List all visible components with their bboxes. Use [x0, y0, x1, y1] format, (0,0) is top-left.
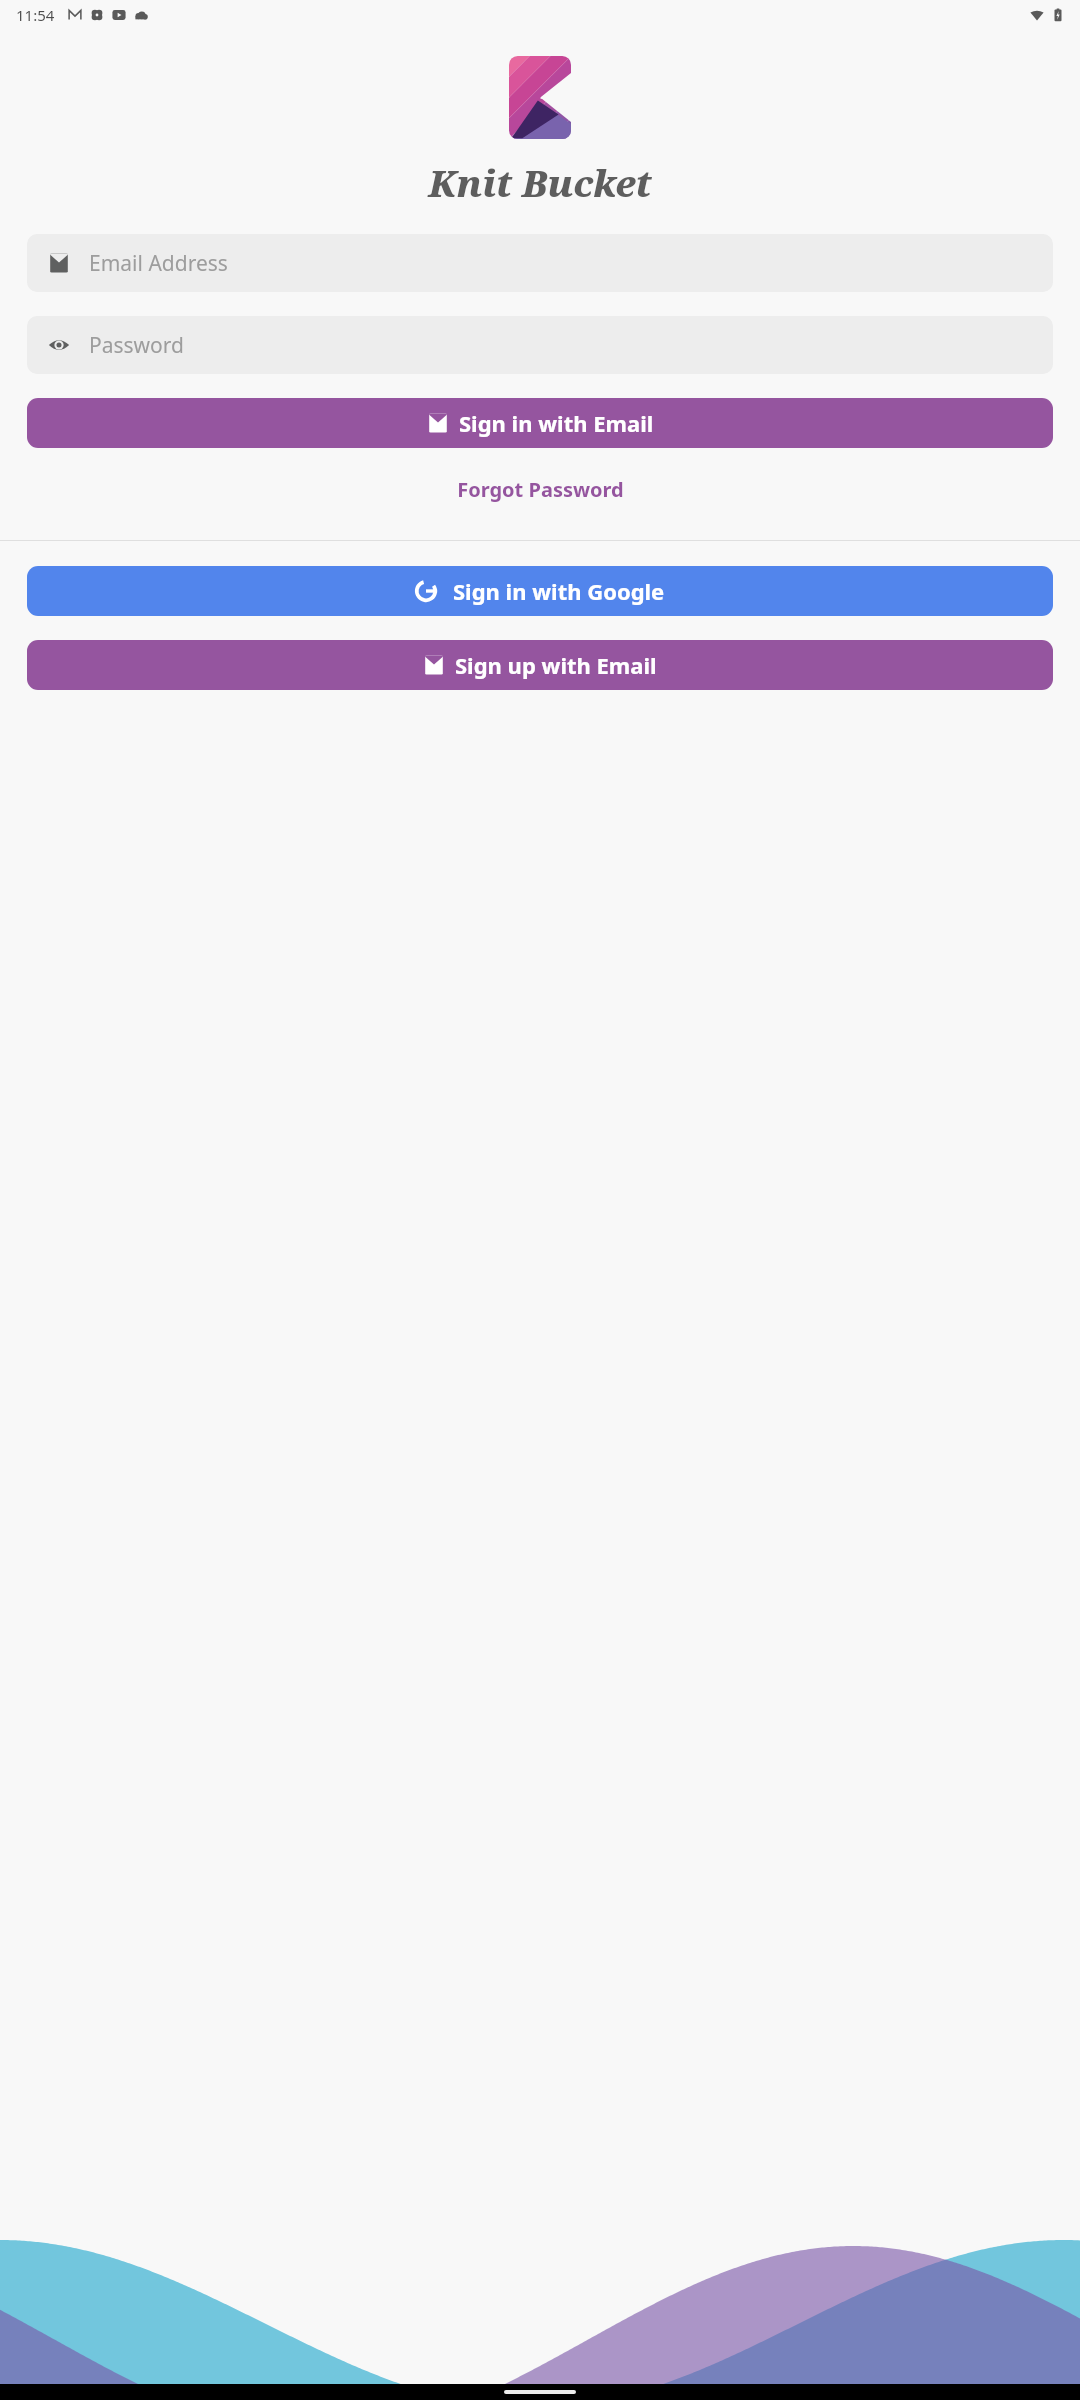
button[interactable]: Email [27, 234, 1053, 292]
staticText: Forgot Password [457, 476, 624, 503]
staticText: Knit Bucket [428, 157, 652, 207]
staticText: Password [89, 331, 184, 360]
staticText: Email Address [89, 249, 228, 278]
button[interactable]: Sign in with Email [27, 398, 1053, 448]
staticText: Sign up with Email [455, 650, 657, 680]
button[interactable]: Sign in with Google [27, 566, 1053, 616]
button[interactable]: Sign up with Email [27, 640, 1053, 690]
staticText: 11:54 [16, 5, 55, 25]
other: Show password [48, 334, 70, 356]
staticText: Sign in with Google [453, 576, 665, 606]
button[interactable]: Show password [27, 316, 1053, 374]
other: Email [48, 252, 70, 274]
staticText: Sign in with Email [459, 408, 654, 438]
button[interactable]: Forgot Password [0, 466, 1080, 513]
